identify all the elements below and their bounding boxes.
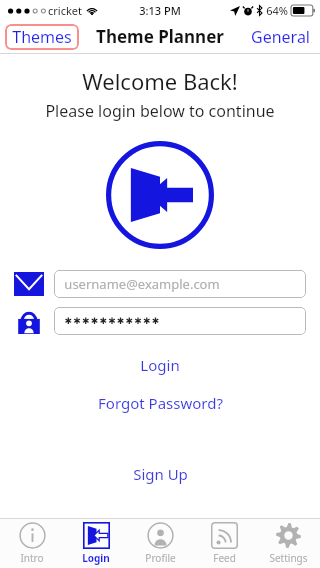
staticText: Theme Planner <box>96 25 224 48</box>
staticText: Sign Up <box>133 464 188 484</box>
button[interactable]: Feed <box>192 519 256 568</box>
button[interactable]: Settings <box>256 519 320 568</box>
staticText: Themes <box>12 26 72 48</box>
staticText: cricket <box>48 3 82 18</box>
other: Settings <box>275 522 302 549</box>
other: Login <box>83 522 110 549</box>
other: Intro <box>19 522 46 549</box>
button[interactable]: Forgot Password? <box>80 390 241 416</box>
button[interactable]: Login <box>122 352 198 378</box>
button[interactable]: ✱✱✱✱✱✱✱✱✱✱✱ <box>54 307 306 335</box>
button[interactable]: Sign Up <box>115 461 206 487</box>
staticText: 3:13 PM <box>139 3 181 18</box>
button[interactable]: Intro <box>0 519 64 568</box>
other: Email <box>14 272 44 296</box>
staticText: General <box>251 26 310 48</box>
button[interactable]: Login <box>64 519 128 568</box>
staticText: Login <box>140 355 180 375</box>
button[interactable]: General <box>241 22 320 52</box>
staticText: Welcome Back! <box>82 66 238 96</box>
staticText: Forgot Password? <box>98 393 223 413</box>
button[interactable]: username@example.com <box>54 270 306 298</box>
staticText: username@example.com <box>64 275 220 293</box>
staticText: Profile <box>145 551 176 565</box>
other: Feed <box>211 522 238 549</box>
button[interactable]: Profile <box>128 519 192 568</box>
staticText: Feed <box>213 551 236 565</box>
button[interactable]: Themes <box>5 24 79 50</box>
staticText: Please login below to continue <box>45 100 275 122</box>
staticText: 64% <box>266 3 288 18</box>
staticText: Settings <box>269 551 308 565</box>
staticText: Login <box>82 551 110 565</box>
button[interactable]: Login logo <box>105 140 215 250</box>
other: Password <box>14 308 44 334</box>
other: Profile <box>147 522 174 549</box>
staticText: Intro <box>20 551 44 565</box>
staticText: ✱✱✱✱✱✱✱✱✱✱✱ <box>64 316 161 326</box>
